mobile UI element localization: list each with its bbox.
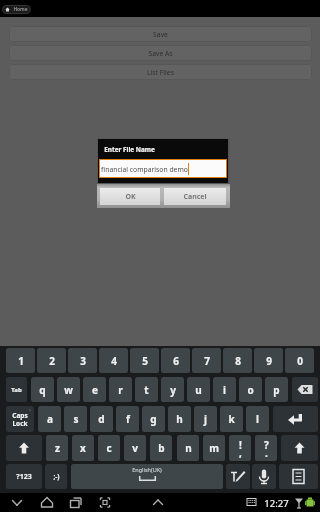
button[interactable]: Shift	[6, 435, 42, 461]
button[interactable]: Screenshot	[94, 493, 116, 512]
button[interactable]: b	[150, 435, 172, 461]
staticText: c	[106, 441, 112, 455]
staticText: 9	[266, 354, 272, 368]
button[interactable]: i	[213, 377, 236, 402]
button[interactable]: 8	[223, 348, 252, 373]
button[interactable]: c	[98, 435, 120, 461]
button[interactable]: r	[109, 377, 132, 402]
staticText: Home	[13, 6, 28, 13]
staticText: b	[158, 441, 165, 455]
button[interactable]: y	[161, 377, 184, 402]
staticText: ;-)	[53, 472, 60, 481]
staticText: Caps Lock	[12, 411, 28, 428]
button[interactable]: t	[135, 377, 158, 402]
button[interactable]: Enter	[273, 406, 318, 432]
staticText: 12:27	[264, 497, 289, 510]
staticText: .	[265, 446, 268, 460]
button[interactable]: u	[187, 377, 210, 402]
staticText: k	[228, 412, 235, 426]
button[interactable]: ?	[255, 435, 277, 461]
staticText: x	[80, 441, 86, 455]
staticText: ?	[264, 438, 269, 452]
button[interactable]: x	[72, 435, 94, 461]
staticText: Enter File Name	[104, 145, 155, 154]
button[interactable]: s	[64, 406, 87, 432]
button[interactable]: ;-)	[45, 464, 67, 489]
button[interactable]: l	[246, 406, 269, 432]
staticText: f	[126, 412, 130, 426]
button[interactable]: 5	[130, 348, 159, 373]
button[interactable]: p	[265, 377, 288, 402]
staticText: y	[170, 383, 176, 397]
staticText: o	[247, 383, 254, 397]
button[interactable]: Shift	[281, 435, 318, 461]
staticText: 7	[204, 354, 210, 368]
button[interactable]: f	[116, 406, 139, 432]
button[interactable]: Save	[9, 26, 312, 42]
staticText: List Files	[147, 68, 174, 77]
staticText: English(UK)	[132, 466, 162, 473]
button[interactable]: !	[229, 435, 251, 461]
staticText: z	[55, 441, 60, 455]
button[interactable]: List Files	[9, 64, 312, 80]
button[interactable]: Save As	[9, 45, 312, 61]
button[interactable]: n	[177, 435, 199, 461]
staticText: v	[132, 441, 138, 455]
button[interactable]: Hide keyboard	[147, 493, 169, 512]
button[interactable]: Home	[36, 493, 58, 512]
staticText: Save As	[148, 49, 173, 58]
button[interactable]: Tab	[6, 377, 27, 402]
button[interactable]: k	[220, 406, 243, 432]
staticText: g	[150, 412, 157, 426]
staticText: a	[47, 412, 53, 426]
button[interactable]: Caps Lock	[6, 406, 34, 432]
button[interactable]: g	[142, 406, 165, 432]
button[interactable]: a	[38, 406, 61, 432]
button[interactable]: Clipboard	[279, 464, 318, 489]
button[interactable]: 1	[6, 348, 35, 373]
button[interactable]: m	[203, 435, 225, 461]
button[interactable]: Recent apps	[65, 493, 87, 512]
button[interactable]: w	[57, 377, 80, 402]
button[interactable]: 4	[99, 348, 128, 373]
button[interactable]: o	[239, 377, 262, 402]
button[interactable]: Voice input	[252, 464, 276, 489]
button[interactable]: Home	[2, 5, 31, 14]
staticText: 3	[80, 354, 86, 368]
staticText: 5	[142, 354, 148, 368]
staticText: t	[144, 383, 149, 397]
staticText: m	[209, 441, 219, 455]
staticText: ,	[239, 446, 242, 460]
staticText: !	[239, 438, 242, 452]
button[interactable]: 2	[37, 348, 66, 373]
button[interactable]: ?123	[6, 464, 42, 489]
button[interactable]: 7	[192, 348, 221, 373]
staticText: n	[185, 441, 192, 455]
button[interactable]: OK	[100, 188, 160, 205]
staticText: h	[176, 412, 183, 426]
staticText: q	[39, 383, 46, 397]
button[interactable]: financial comparison demo	[100, 160, 226, 177]
button[interactable]: 0	[285, 348, 314, 373]
button[interactable]: 6	[161, 348, 190, 373]
button[interactable]: v	[124, 435, 146, 461]
button[interactable]: Backspace	[292, 377, 318, 402]
button[interactable]: Cancel	[164, 188, 226, 205]
staticText: d	[98, 412, 105, 426]
button[interactable]: Back	[6, 493, 28, 512]
button[interactable]: z	[46, 435, 68, 461]
button[interactable]: h	[168, 406, 191, 432]
button[interactable]: d	[90, 406, 113, 432]
staticText: 2	[49, 354, 55, 368]
staticText: 4	[111, 354, 117, 368]
button[interactable]: 9	[254, 348, 283, 373]
button[interactable]: 3	[68, 348, 97, 373]
button[interactable]: Space	[71, 464, 223, 489]
button[interactable]: e	[83, 377, 106, 402]
button[interactable]: q	[31, 377, 54, 402]
button[interactable]: Handwriting	[226, 464, 250, 489]
staticText: p	[273, 383, 280, 397]
staticText: e	[92, 383, 98, 397]
staticText: w	[64, 383, 73, 397]
button[interactable]: j	[194, 406, 217, 432]
